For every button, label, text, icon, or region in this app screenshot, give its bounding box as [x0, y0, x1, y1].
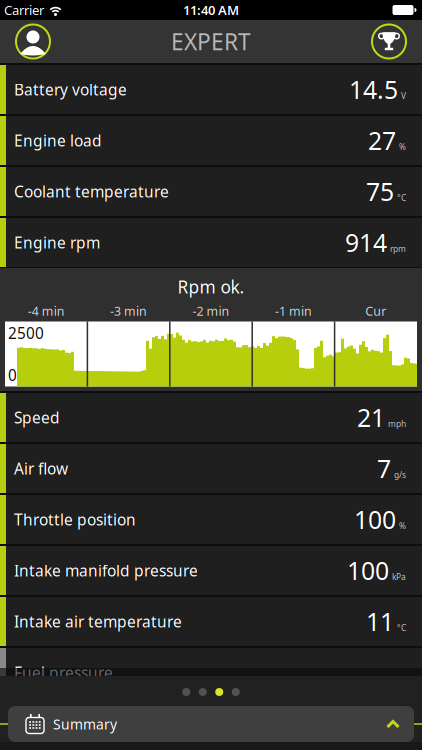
staticText: % — [399, 141, 406, 152]
staticText: Air flow — [14, 458, 68, 479]
staticText: Rpm ok. — [177, 275, 244, 299]
staticText: Battery voltage — [14, 79, 127, 100]
staticText: Carrier — [4, 1, 44, 19]
staticText: Summary — [53, 715, 117, 733]
staticText: V — [401, 90, 406, 101]
staticText: 100 — [354, 503, 396, 536]
staticText: 11:40 AM — [183, 1, 239, 19]
staticText: Intake manifold pressure — [14, 560, 198, 581]
staticText: 0 — [8, 365, 17, 385]
staticText: °C — [397, 622, 406, 633]
button[interactable]: Air flow — [0, 444, 422, 493]
staticText: 11 — [366, 605, 394, 638]
staticText: Throttle position — [14, 509, 136, 530]
staticText: % — [399, 520, 406, 531]
button[interactable]: Speed — [0, 393, 422, 442]
button[interactable]: Engine rpm — [0, 218, 422, 267]
staticText: 2500 — [8, 322, 44, 343]
button[interactable]: Summary — [8, 706, 414, 742]
staticText: °C — [397, 192, 406, 203]
button[interactable]: Profile — [0, 24, 50, 58]
staticText: 75 — [366, 175, 394, 208]
staticText: g/s — [394, 469, 406, 480]
button[interactable]: Fuel pressure — [0, 648, 422, 697]
staticText: -1 min — [275, 303, 312, 319]
button[interactable]: Battery voltage — [0, 65, 422, 114]
button[interactable]: Engine load — [0, 116, 422, 165]
staticText: 27 — [368, 124, 396, 157]
staticText: Engine rpm — [14, 232, 100, 253]
staticText: Fuel pressure — [14, 662, 113, 683]
staticText: 7 — [377, 452, 391, 485]
button[interactable]: Achievements — [372, 24, 422, 58]
staticText: -3 min — [110, 303, 147, 319]
staticText: Engine load — [14, 130, 102, 151]
staticText: 21 — [357, 401, 385, 434]
staticText: kPa — [392, 571, 406, 582]
staticText: rpm — [390, 243, 406, 254]
staticText: EXPERT — [171, 26, 251, 57]
staticText: 914 — [345, 226, 387, 259]
staticText: 14.5 — [349, 73, 398, 106]
staticText: Coolant temperature — [14, 181, 169, 202]
button[interactable]: Intake air temperature — [0, 597, 422, 646]
staticText: Intake air temperature — [14, 611, 182, 632]
button[interactable]: Throttle position — [0, 495, 422, 544]
button[interactable]: Coolant temperature — [0, 167, 422, 216]
staticText: Speed — [14, 407, 60, 428]
staticText: -2 min — [192, 303, 229, 319]
staticText: -4 min — [28, 303, 65, 319]
staticText: Cur — [365, 303, 386, 319]
button[interactable]: Intake manifold pressure — [0, 546, 422, 595]
staticText: mph — [388, 418, 406, 429]
staticText: 100 — [347, 554, 389, 587]
